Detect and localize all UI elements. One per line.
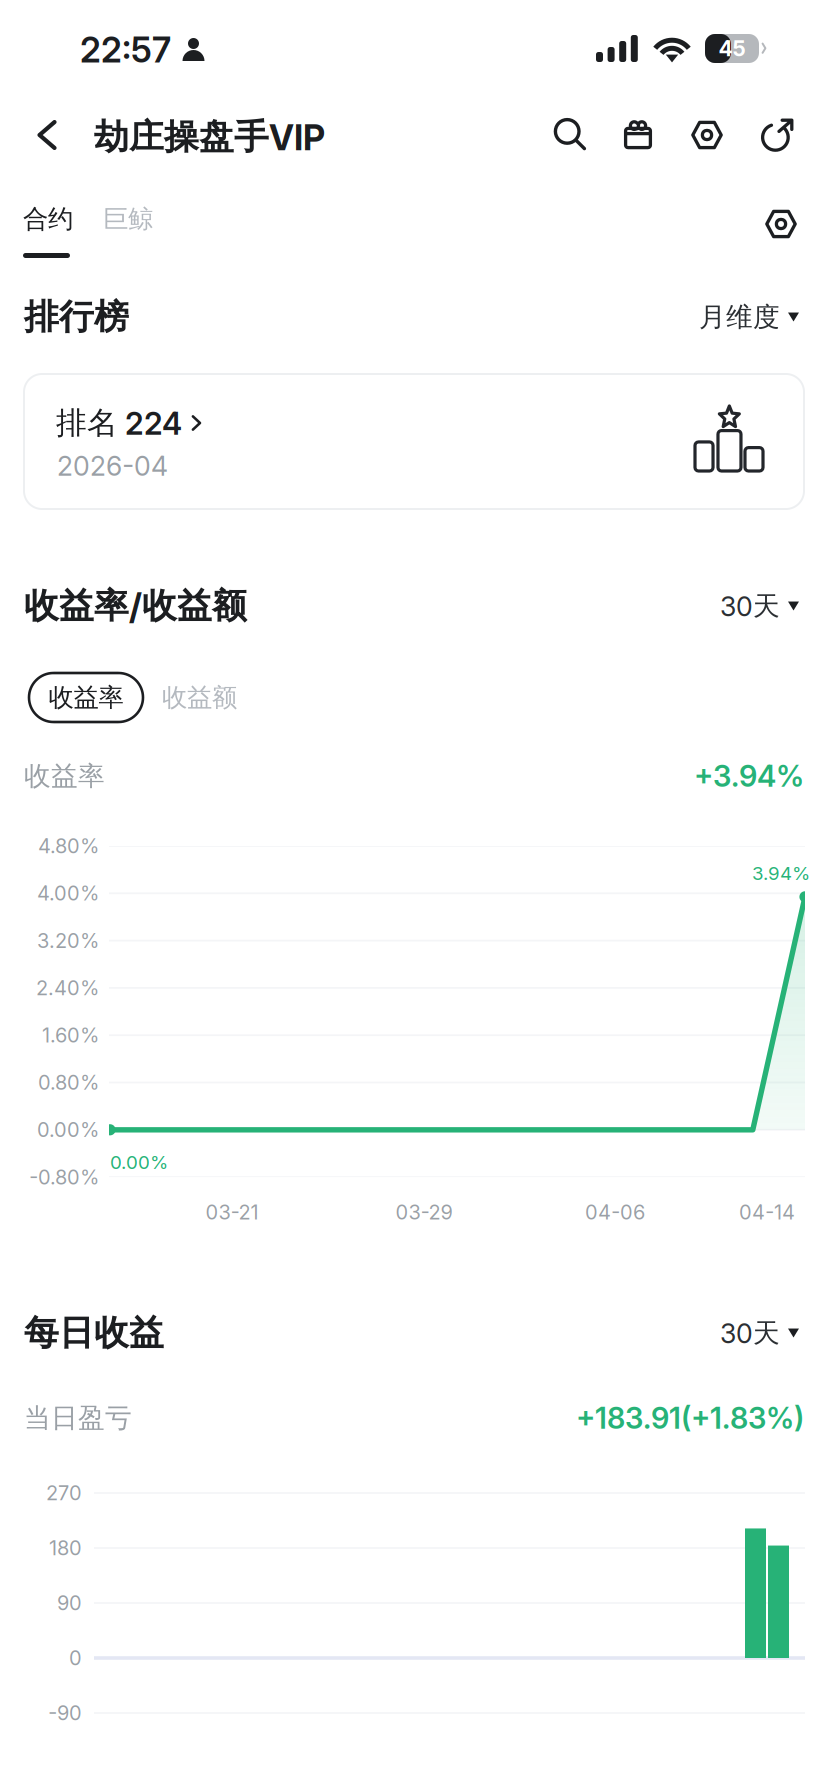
staticText: 3.20%	[37, 928, 99, 953]
button[interactable]: 合约	[23, 196, 91, 270]
button[interactable]: 30天	[720, 578, 799, 634]
staticText: 04-06	[585, 1200, 645, 1224]
staticText: 270	[46, 1481, 82, 1505]
staticText: 04-14	[739, 1200, 795, 1224]
staticText: 收益率/收益额	[24, 584, 247, 628]
staticText: 4.00%	[37, 881, 99, 905]
button[interactable]: Rewards	[606, 101, 670, 169]
staticText: 03-21	[205, 1200, 258, 1224]
staticText: 0.00%	[110, 1151, 168, 1174]
staticText: -0.80%	[29, 1165, 99, 1189]
button[interactable]: Back	[15, 101, 79, 169]
staticText: 22:57	[80, 29, 171, 71]
staticText: 排名 224	[56, 404, 182, 442]
staticText: 30天	[720, 589, 780, 623]
staticText: 每日收益	[24, 1311, 164, 1355]
staticText: 180	[49, 1536, 82, 1560]
staticText: +183.91(+1.83%)	[576, 1400, 804, 1436]
button[interactable]: Settings	[675, 101, 739, 169]
staticText: -90	[48, 1701, 82, 1725]
staticText: 3.94%	[752, 862, 810, 885]
button[interactable]: 月维度	[699, 289, 799, 345]
button[interactable]: 30天	[720, 1305, 799, 1361]
staticText: 月维度	[699, 300, 780, 334]
staticText: 巨鲸	[103, 203, 153, 235]
staticText: 4.80%	[38, 834, 99, 858]
staticText: +3.94%	[694, 758, 804, 794]
button[interactable]: 巨鲸	[103, 196, 171, 242]
staticText: 排行榜	[24, 295, 129, 339]
staticText: 03-29	[395, 1200, 452, 1224]
staticText: 收益率	[48, 681, 123, 713]
button[interactable]: 排名 224	[24, 374, 804, 509]
button[interactable]: Search	[538, 101, 602, 169]
staticText: 2026-04	[57, 450, 168, 482]
staticText: 收益额	[162, 681, 237, 713]
staticText: 合约	[23, 203, 73, 235]
staticText: 1.60%	[42, 1023, 99, 1047]
staticText: 0.00%	[37, 1118, 99, 1142]
button[interactable]: Share	[745, 101, 809, 169]
staticText: 当日盈亏	[24, 1401, 132, 1435]
staticText: 2.40%	[36, 976, 99, 1000]
staticText: 90	[57, 1591, 82, 1615]
staticText: 劫庄操盘手VIP	[94, 115, 325, 159]
staticText: 0	[69, 1646, 82, 1670]
staticText: 45	[718, 36, 745, 61]
button[interactable]: 收益率	[29, 673, 143, 722]
button[interactable]: Filter	[753, 196, 809, 252]
staticText: 30天	[720, 1316, 780, 1350]
button[interactable]: 收益额	[162, 673, 240, 722]
staticText: 0.80%	[38, 1070, 99, 1095]
staticText: 收益率	[24, 759, 105, 793]
